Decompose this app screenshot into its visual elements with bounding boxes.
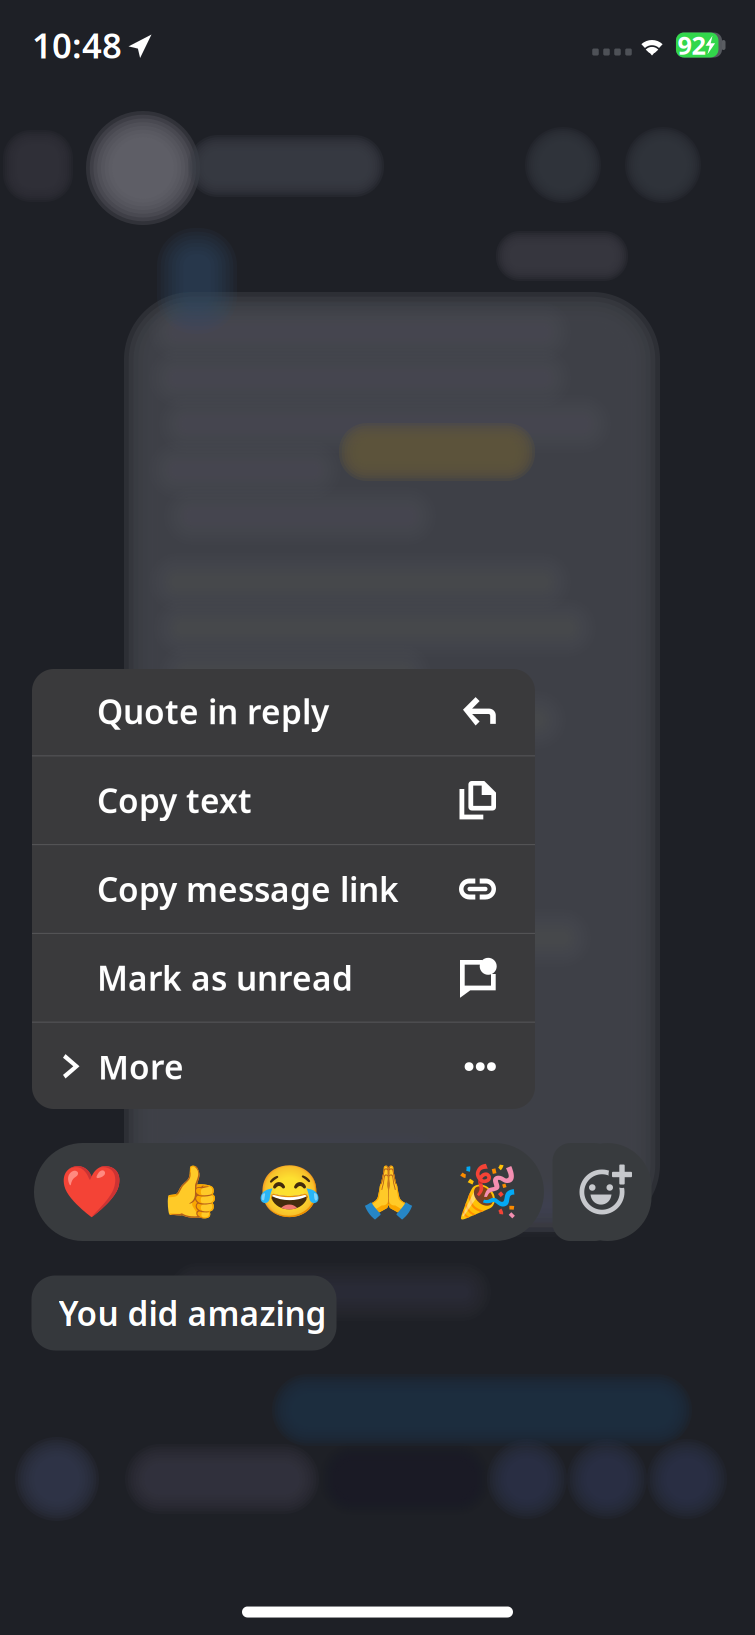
button[interactable]: Copy message link xyxy=(32,845,535,933)
staticText: More xyxy=(98,1044,184,1089)
staticText: Copy text xyxy=(97,778,252,822)
staticText: You did amazing xyxy=(58,1291,326,1335)
button[interactable]: Quote in reply xyxy=(32,667,535,755)
button[interactable]: Mark as unread xyxy=(32,934,535,1022)
button[interactable]: 🎉 xyxy=(437,1143,536,1241)
staticText: 10:48 xyxy=(32,22,122,68)
staticText: 😂 xyxy=(257,1163,320,1221)
button[interactable]: Add reaction xyxy=(552,1143,651,1241)
button[interactable]: ❤️ xyxy=(41,1143,140,1241)
button[interactable]: 🙏 xyxy=(338,1143,437,1241)
staticText: 👍 xyxy=(158,1163,221,1221)
staticText: Copy message link xyxy=(97,867,399,911)
button[interactable]: More xyxy=(32,1023,535,1110)
staticText: 🎉 xyxy=(455,1163,518,1221)
button[interactable]: 😂 xyxy=(239,1143,338,1241)
staticText: 92 xyxy=(677,28,705,62)
button[interactable]: 👍 xyxy=(140,1143,239,1241)
staticText: Mark as unread xyxy=(97,956,353,1000)
staticText: ❤️ xyxy=(59,1163,122,1221)
staticText: Quote in reply xyxy=(97,689,329,734)
button[interactable]: Copy text xyxy=(32,756,535,844)
staticText: 🙏 xyxy=(356,1163,419,1221)
